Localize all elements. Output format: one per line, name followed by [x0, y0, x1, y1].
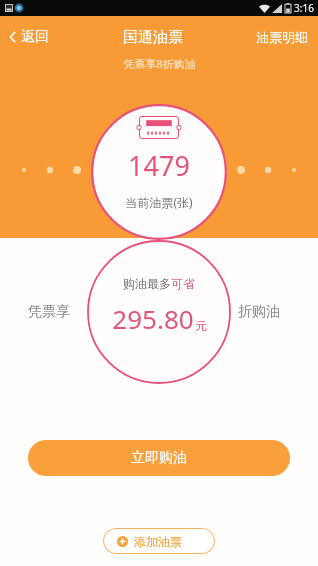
- staticText: 元: [195, 318, 207, 333]
- button[interactable]: 添加油票: [103, 528, 215, 554]
- button[interactable]: 返回: [0, 24, 57, 50]
- staticText: 折购油: [238, 303, 280, 321]
- staticText: 当前油票(张): [125, 194, 193, 210]
- button[interactable]: 立即购油: [28, 440, 290, 476]
- staticText: 3:16: [294, 1, 314, 15]
- button[interactable]: 油票明细: [248, 25, 318, 49]
- staticText: 立即购油: [131, 449, 187, 467]
- staticText: 可省: [171, 276, 195, 291]
- staticText: 油票明细: [256, 29, 308, 45]
- staticText: 1479: [128, 147, 190, 184]
- staticText: 295.80: [112, 301, 194, 336]
- staticText: 购油最多: [123, 276, 171, 291]
- staticText: 添加油票: [134, 534, 182, 549]
- staticText: 国通油票: [123, 28, 183, 47]
- staticText: 返回: [21, 28, 49, 46]
- staticText: 凭票享8折购油: [123, 56, 196, 71]
- staticText: 凭票享: [28, 303, 70, 321]
